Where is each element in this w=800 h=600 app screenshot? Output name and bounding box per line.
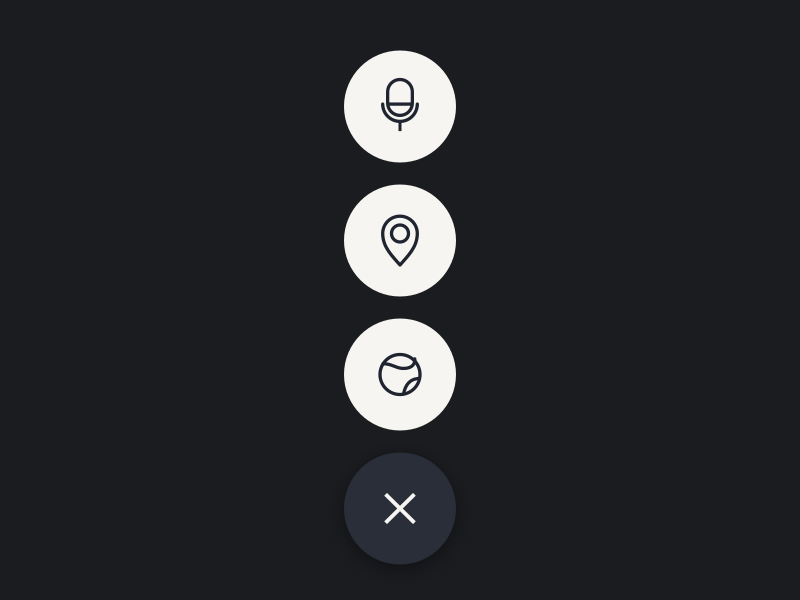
button[interactable]: Nearby places — [344, 184, 456, 296]
button[interactable]: Voice search — [344, 50, 456, 162]
button[interactable]: Sports — [344, 318, 456, 430]
button[interactable]: Close — [344, 452, 456, 564]
